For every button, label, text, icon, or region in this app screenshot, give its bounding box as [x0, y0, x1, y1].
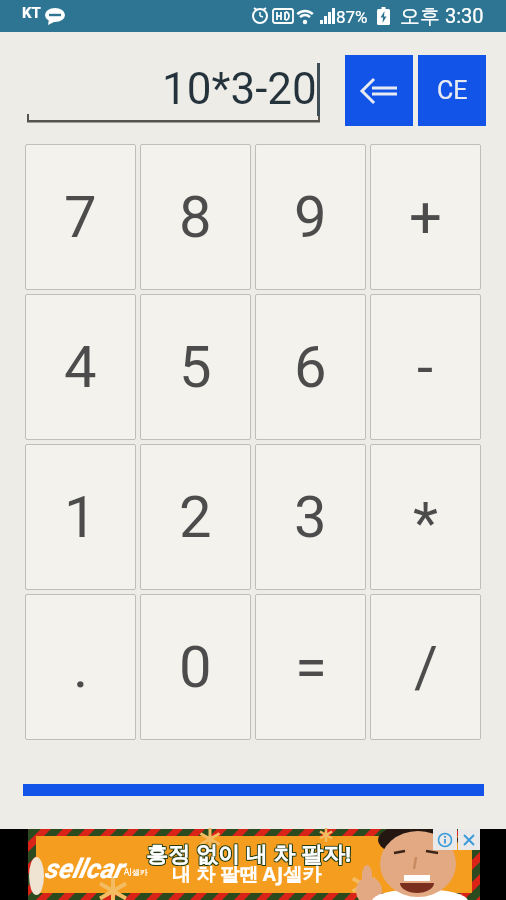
- staticText: 흥정 없이 내 차 팔자!: [147, 837, 353, 867]
- button[interactable]: +: [370, 144, 481, 290]
- staticText: *: [413, 489, 438, 557]
- button[interactable]: .: [25, 594, 136, 740]
- staticText: 3: [294, 483, 327, 551]
- staticText: .: [73, 633, 89, 701]
- staticText: 흥정 없이 내 차 팔자!: [147, 839, 353, 869]
- staticText: 5: [179, 333, 212, 401]
- staticText: KT: [22, 4, 41, 22]
- staticText: 6: [294, 333, 327, 401]
- button[interactable]: 8: [140, 144, 251, 290]
- staticText: 흥정 없이 내 차 팔자!: [146, 837, 352, 867]
- button[interactable]: =: [255, 594, 366, 740]
- staticText: 9: [294, 183, 327, 251]
- staticText: 2: [179, 483, 212, 551]
- staticText: /: [414, 633, 438, 701]
- button[interactable]: /: [370, 594, 481, 740]
- button[interactable]: 3: [255, 444, 366, 590]
- staticText: =: [295, 633, 327, 701]
- staticText: sellcar: [44, 853, 123, 885]
- button[interactable]: sellcar: [0, 829, 506, 900]
- button[interactable]: [458, 829, 480, 850]
- staticText: 내 차 팔땐 AJ셀카: [172, 861, 322, 887]
- staticText: AJ셀카: [124, 866, 148, 877]
- staticText: 7: [64, 183, 97, 251]
- staticText: 흥정 없이 내 차 팔자!: [147, 838, 353, 868]
- staticText: 흥정 없이 내 차 팔자!: [145, 838, 351, 868]
- button[interactable]: 10*3-20: [27, 63, 317, 115]
- button[interactable]: *: [370, 444, 481, 590]
- button[interactable]: [345, 55, 413, 126]
- button[interactable]: 4: [25, 294, 136, 440]
- staticText: 흥정 없이 내 차 팔자!: [145, 837, 351, 867]
- staticText: 0: [179, 633, 212, 701]
- button[interactable]: 9: [255, 144, 366, 290]
- staticText: 1: [64, 483, 97, 551]
- staticText: 흥정 없이 내 차 팔자!: [146, 838, 352, 868]
- button[interactable]: [433, 829, 457, 850]
- button[interactable]: -: [370, 294, 481, 440]
- staticText: -: [417, 333, 434, 401]
- button[interactable]: CE: [418, 55, 486, 126]
- staticText: 흥정 없이 내 차 팔자!: [145, 839, 351, 869]
- staticText: 흥정 없이 내 차 팔자!: [146, 839, 352, 869]
- button[interactable]: 1: [25, 444, 136, 590]
- staticText: 87%: [336, 7, 368, 27]
- button[interactable]: 2: [140, 444, 251, 590]
- button[interactable]: 5: [140, 294, 251, 440]
- button[interactable]: 0: [140, 594, 251, 740]
- staticText: 4: [64, 333, 97, 401]
- staticText: +: [409, 183, 442, 251]
- staticText: CE: [437, 76, 468, 105]
- staticText: 10*3-20: [162, 63, 317, 115]
- staticText: 8: [179, 183, 212, 251]
- button[interactable]: 7: [25, 144, 136, 290]
- button[interactable]: 6: [255, 294, 366, 440]
- staticText: 오후 3:30: [400, 4, 484, 29]
